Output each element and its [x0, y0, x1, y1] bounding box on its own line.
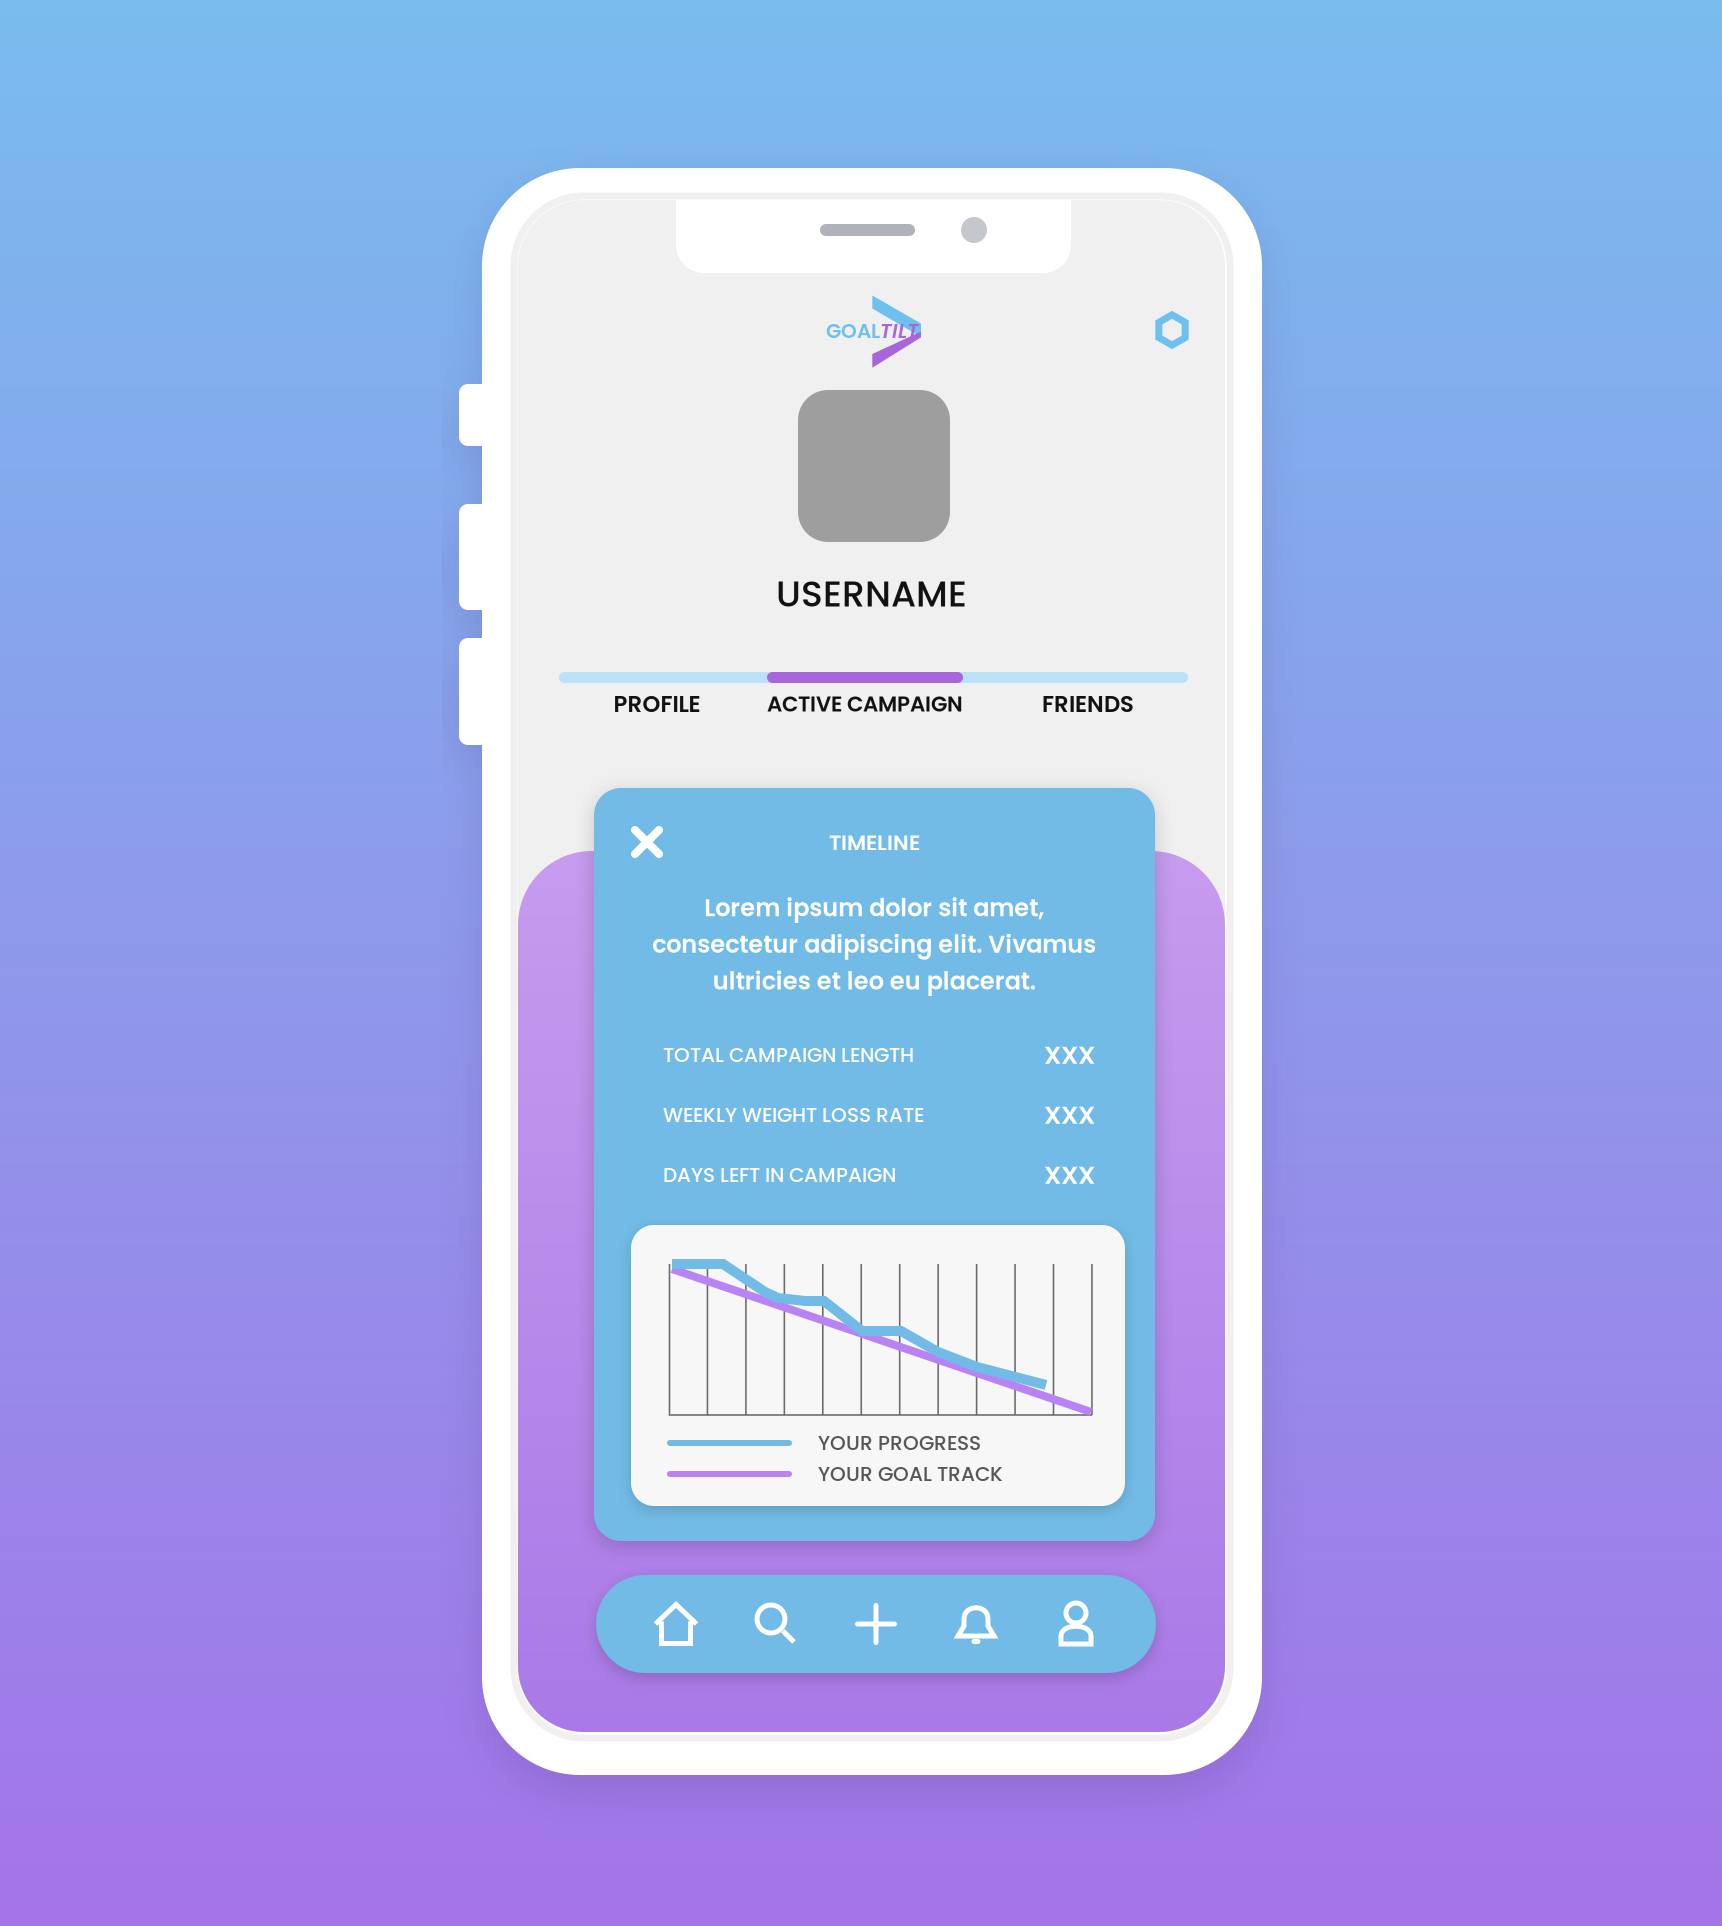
staticText: USERNAME	[776, 569, 967, 619]
button[interactable]: Home	[626, 1575, 726, 1673]
staticText: PROFILE	[613, 688, 700, 720]
staticText: ACTIVE CAMPAIGN	[767, 689, 963, 719]
staticText: XXX	[1044, 1157, 1095, 1193]
staticText: YOUR GOAL TRACK	[818, 1460, 1003, 1488]
staticText: XXX	[1044, 1037, 1095, 1073]
button[interactable]: Search	[726, 1575, 826, 1673]
button[interactable]: Close	[619, 814, 675, 870]
staticText: FRIENDS	[1042, 688, 1134, 720]
staticText: TILT	[880, 317, 919, 345]
staticText: TOTAL CAMPAIGN LENGTH	[663, 1041, 914, 1069]
staticText: WEEKLY WEIGHT LOSS RATE	[663, 1101, 924, 1129]
staticText: DAYS LEFT IN CAMPAIGN	[663, 1161, 896, 1189]
staticText: GOAL	[826, 317, 880, 345]
button[interactable]: Profile	[1026, 1575, 1126, 1673]
button[interactable]: Notifications	[926, 1575, 1026, 1673]
button[interactable]: PROFILE	[567, 681, 747, 727]
button[interactable]: ACTIVE CAMPAIGN	[750, 681, 980, 727]
staticText: XXX	[1044, 1097, 1095, 1133]
button[interactable]: Rewards badge	[1143, 301, 1201, 359]
staticText: YOUR PROGRESS	[818, 1429, 981, 1457]
staticText: Lorem ipsum dolor sit amet, consectetur …	[652, 891, 1096, 998]
button[interactable]: Create	[826, 1575, 926, 1673]
staticText: TIMELINE	[829, 828, 920, 858]
button[interactable]: FRIENDS	[998, 681, 1178, 727]
